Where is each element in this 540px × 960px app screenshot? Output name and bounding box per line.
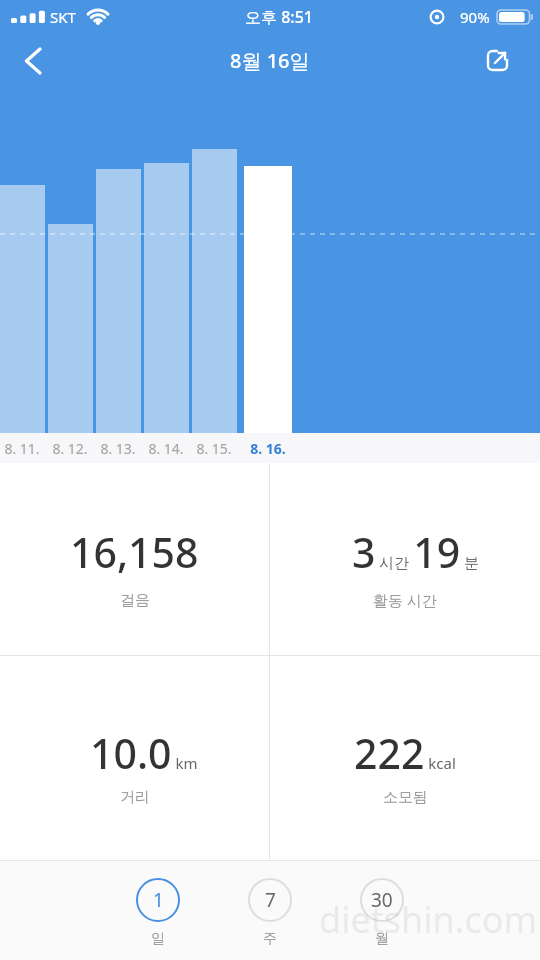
staticText: dietshin.com (319, 895, 538, 944)
staticText: 1 (153, 887, 164, 913)
button[interactable] (469, 33, 525, 88)
staticText: 16,158 (70, 524, 199, 580)
staticText: 걸음 (120, 591, 150, 610)
staticText: 8. 13. (97, 439, 139, 458)
staticText: 월 (375, 930, 389, 948)
staticText: 오후 8:51 (245, 6, 313, 28)
staticText: 8. 16. (246, 439, 290, 458)
button[interactable]: 3 시간 19 분 (270, 463, 540, 655)
button[interactable]: 7 (248, 878, 292, 948)
staticText: 90% (460, 7, 490, 27)
staticText: 8월 16일 (230, 47, 310, 74)
staticText: SKT (50, 7, 76, 27)
staticText: 거리 (120, 788, 150, 807)
staticText: 활동 시간 (373, 590, 437, 610)
staticText: 8. 14. (145, 439, 187, 458)
staticText: 8. 15. (193, 439, 235, 458)
button[interactable]: 16,158 (0, 463, 269, 655)
staticText: 222 kcal (354, 725, 456, 781)
staticText: 30 (371, 887, 393, 913)
staticText: 8. 11. (1, 439, 43, 458)
staticText: 10.0 km (90, 725, 198, 781)
staticText: 8. 12. (49, 439, 91, 458)
staticText: 3 시간 19 분 (352, 524, 480, 580)
button[interactable] (0, 33, 56, 88)
staticText: 주 (263, 930, 277, 948)
button[interactable]: 222 kcal (270, 656, 540, 860)
button[interactable]: 1 (136, 878, 180, 948)
staticText: 일 (151, 930, 165, 948)
button[interactable]: 30 (360, 878, 404, 948)
staticText: 소모됨 (383, 788, 428, 807)
staticText: 7 (265, 887, 276, 913)
button[interactable]: 10.0 km (0, 656, 269, 860)
